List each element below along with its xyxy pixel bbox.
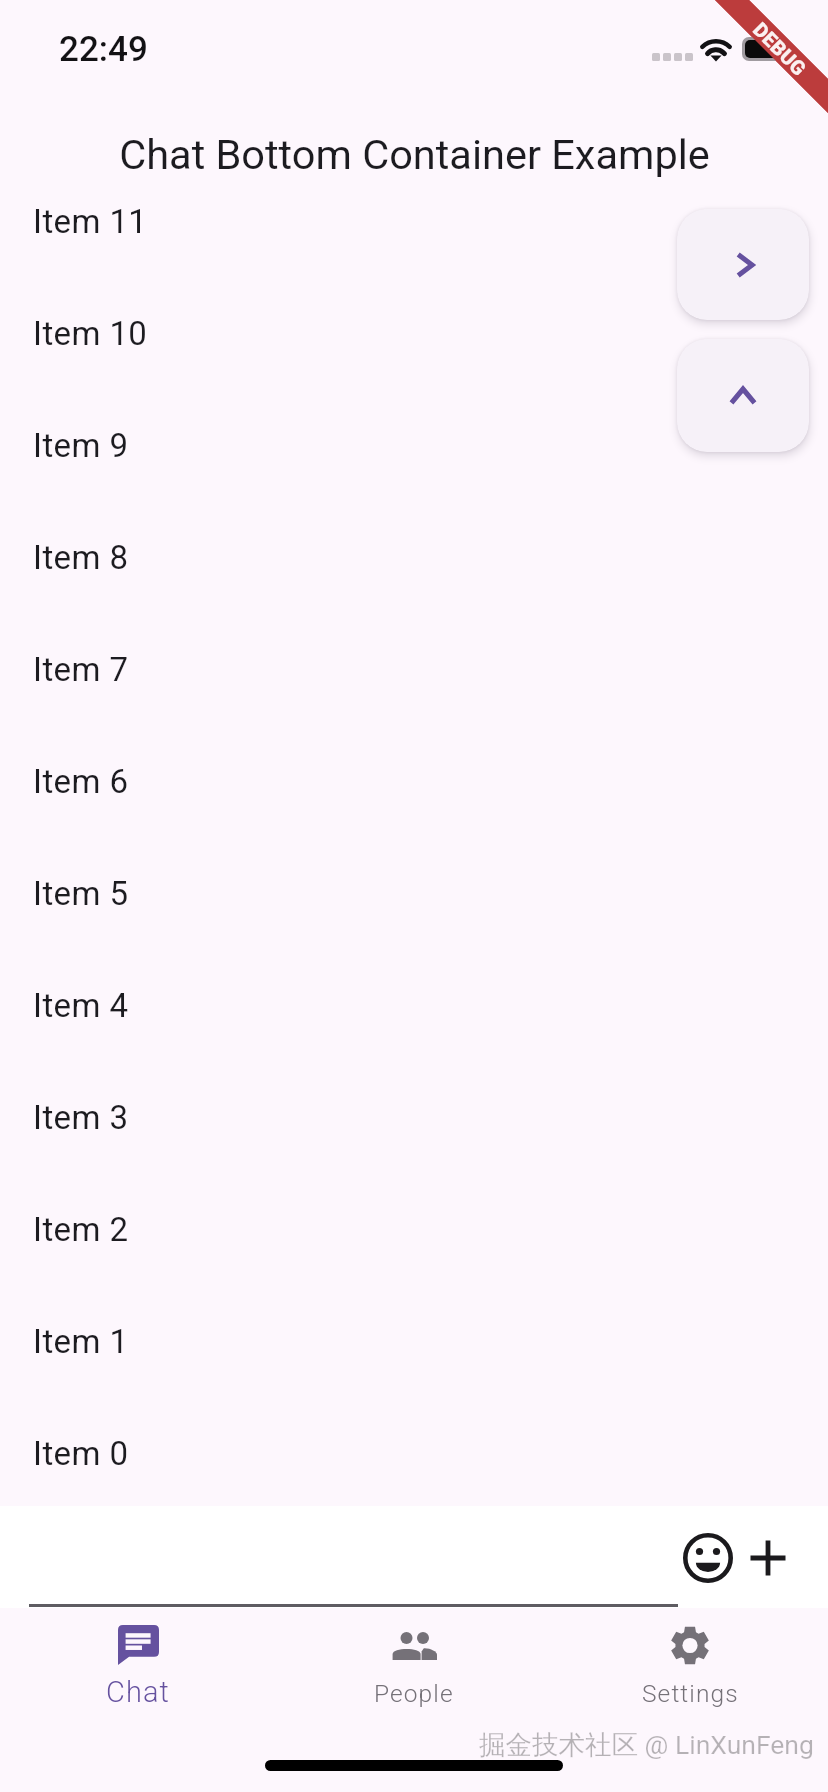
staticText: Item 11 (33, 202, 148, 241)
staticText: Item 4 (33, 986, 129, 1025)
button[interactable]: Item 9 (0, 389, 828, 501)
button[interactable]: Chat (0, 1608, 276, 1738)
button[interactable]: Item 11 (0, 165, 828, 277)
button[interactable]: Item 10 (0, 277, 828, 389)
staticText: Item 0 (33, 1434, 129, 1473)
button[interactable]: Item 0 (0, 1397, 828, 1509)
staticText: Item 3 (33, 1098, 129, 1137)
staticText: Chat (106, 1675, 171, 1709)
button[interactable]: Item 4 (0, 949, 828, 1061)
button[interactable]: Item 2 (0, 1173, 828, 1285)
staticText: Item 8 (33, 538, 129, 577)
button[interactable]: Scroll to top (677, 339, 809, 452)
staticText: Item 5 (33, 874, 129, 913)
staticText: Settings (642, 1679, 739, 1708)
button[interactable]: Item 5 (0, 837, 828, 949)
button[interactable]: Settings (552, 1608, 828, 1738)
staticText: Item 9 (33, 426, 129, 465)
staticText: Item 2 (33, 1210, 129, 1249)
button[interactable]: Item 6 (0, 725, 828, 837)
staticText: DEBUG (749, 18, 811, 80)
staticText: Chat Bottom Container Example (119, 130, 710, 179)
staticText: Item 10 (33, 314, 148, 353)
button[interactable]: Item 7 (0, 613, 828, 725)
button[interactable]: Item 1 (0, 1285, 828, 1397)
staticText: Item 1 (33, 1322, 129, 1361)
staticText: 掘金技术社区 @ LinXunFeng (479, 1728, 814, 1761)
staticText: People (374, 1679, 454, 1708)
button[interactable]: Emoji (675, 1525, 741, 1591)
button[interactable]: People (276, 1608, 552, 1738)
button[interactable]: Item 8 (0, 501, 828, 613)
staticText: Item 7 (33, 650, 129, 689)
staticText: DEBUG (749, 18, 811, 80)
button[interactable]: Item 3 (0, 1061, 828, 1173)
staticText: 22:49 (59, 29, 148, 70)
staticText: Item 6 (33, 762, 129, 801)
button[interactable]: Scroll to bottom (677, 209, 809, 320)
button[interactable]: Add (735, 1525, 801, 1591)
